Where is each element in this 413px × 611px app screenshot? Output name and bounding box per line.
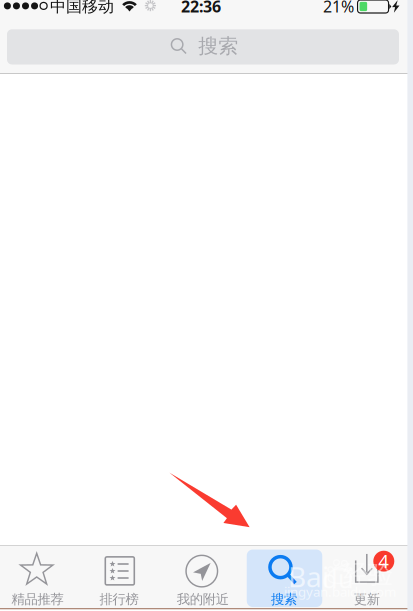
- staticText: 22:36: [181, 0, 221, 17]
- button[interactable]: 排行榜: [83, 546, 165, 608]
- staticText: Bai: [288, 558, 329, 595]
- button[interactable]: 搜索: [7, 29, 399, 64]
- staticText: 我的附近: [177, 591, 229, 607]
- button[interactable]: 搜索: [248, 546, 330, 608]
- button[interactable]: 精品推荐: [0, 546, 83, 608]
- staticText: 4: [378, 548, 389, 573]
- staticText: 搜索: [198, 34, 238, 58]
- staticText: 21%: [323, 0, 354, 17]
- staticText: 搜索: [271, 591, 297, 607]
- button[interactable]: 我的附近: [165, 546, 248, 608]
- staticText: jingyan.baidu.com: [284, 583, 396, 600]
- staticText: 排行榜: [100, 591, 139, 607]
- staticText: 更新: [354, 591, 380, 607]
- staticText: 中国移动: [50, 0, 114, 16]
- staticText: 经验: [343, 559, 393, 590]
- button[interactable]: 更新: [330, 546, 413, 608]
- staticText: 精品推荐: [12, 591, 64, 607]
